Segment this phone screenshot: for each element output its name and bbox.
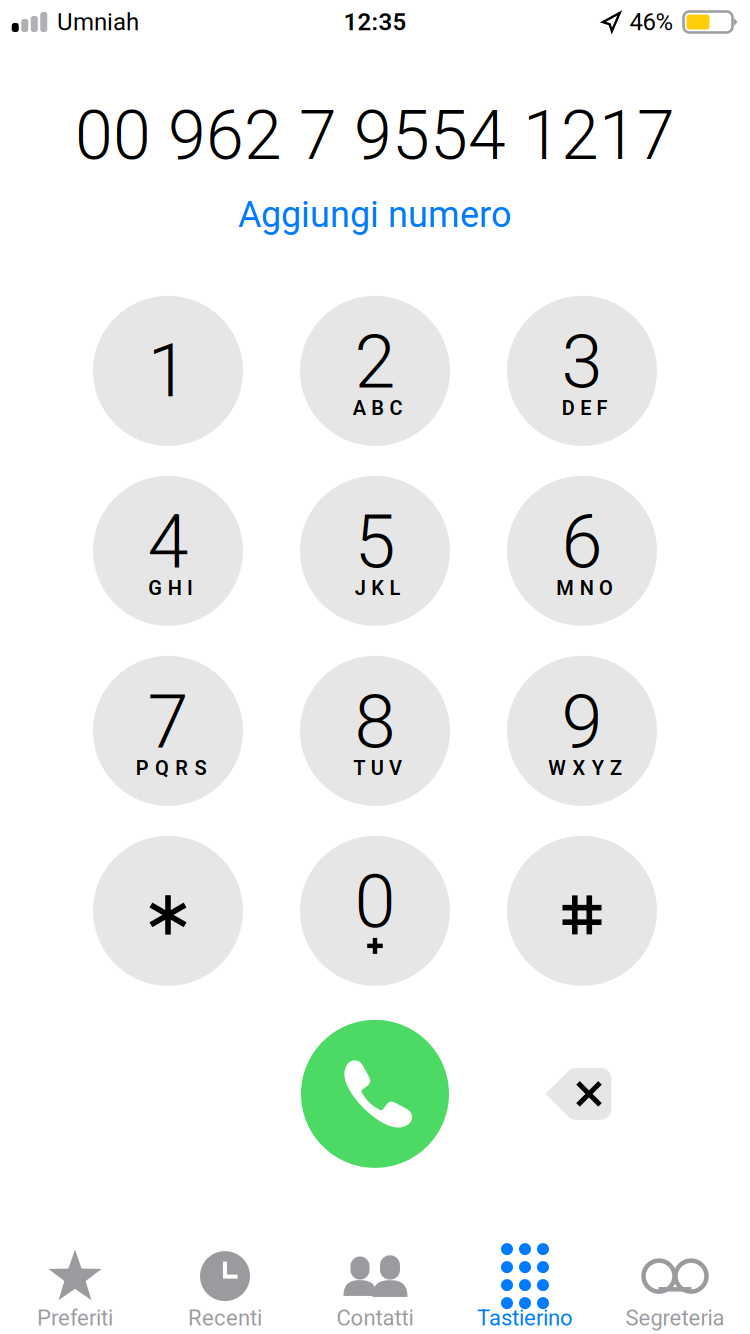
button[interactable] [93, 836, 243, 986]
staticText: WXYZ [548, 756, 622, 780]
staticText: ABC [353, 396, 402, 420]
button[interactable]: Tastierino [450, 1250, 600, 1331]
staticText: 1 [147, 327, 188, 414]
staticText: DEF [562, 396, 607, 420]
staticText: Umniah [57, 8, 139, 36]
staticText: Preferiti [37, 1305, 113, 1331]
staticText: 2 [354, 319, 395, 405]
button[interactable] [507, 836, 657, 986]
button[interactable]: 7 [93, 656, 243, 806]
button[interactable]: 4 [93, 476, 243, 626]
staticText: PQRS [136, 756, 207, 780]
staticText: 12:35 [343, 8, 406, 36]
button[interactable]: 9 [507, 656, 657, 806]
button[interactable]: Call [301, 1020, 449, 1168]
button[interactable]: Segreteria [600, 1250, 750, 1331]
button[interactable]: 5 [300, 476, 450, 626]
staticText: 9 [561, 679, 602, 765]
button[interactable]: Aggiungi numero [222, 190, 528, 240]
staticText: Segreteria [625, 1305, 724, 1331]
staticText: 46% [629, 8, 673, 36]
button[interactable]: Delete [528, 1060, 628, 1128]
staticText: 4 [147, 499, 188, 585]
button[interactable]: 1 [93, 296, 243, 446]
button[interactable]: Contatti [300, 1250, 450, 1331]
staticText: JKL [355, 576, 400, 600]
staticText: Contatti [336, 1305, 413, 1331]
button[interactable]: Recenti [150, 1250, 300, 1331]
staticText: TUV [353, 756, 402, 780]
staticText: 6 [561, 499, 602, 585]
staticText: 8 [354, 679, 395, 765]
button[interactable]: 2 [300, 296, 450, 446]
staticText: Tastierino [477, 1305, 573, 1331]
button[interactable]: 6 [507, 476, 657, 626]
staticText: Aggiungi numero [238, 194, 512, 236]
staticText: 7 [147, 679, 188, 765]
staticText: 3 [561, 319, 602, 405]
staticText: GHI [148, 576, 193, 600]
staticText: 0 [354, 858, 395, 945]
staticText: Recenti [188, 1305, 262, 1331]
button[interactable]: Preferiti [0, 1250, 150, 1331]
staticText: 5 [354, 499, 395, 585]
button[interactable]: 3 [507, 296, 657, 446]
staticText: 00 962 7 9554 1217 [75, 96, 675, 176]
button[interactable]: 8 [300, 656, 450, 806]
button[interactable]: 0 [300, 836, 450, 986]
staticText: MNO [556, 576, 613, 600]
